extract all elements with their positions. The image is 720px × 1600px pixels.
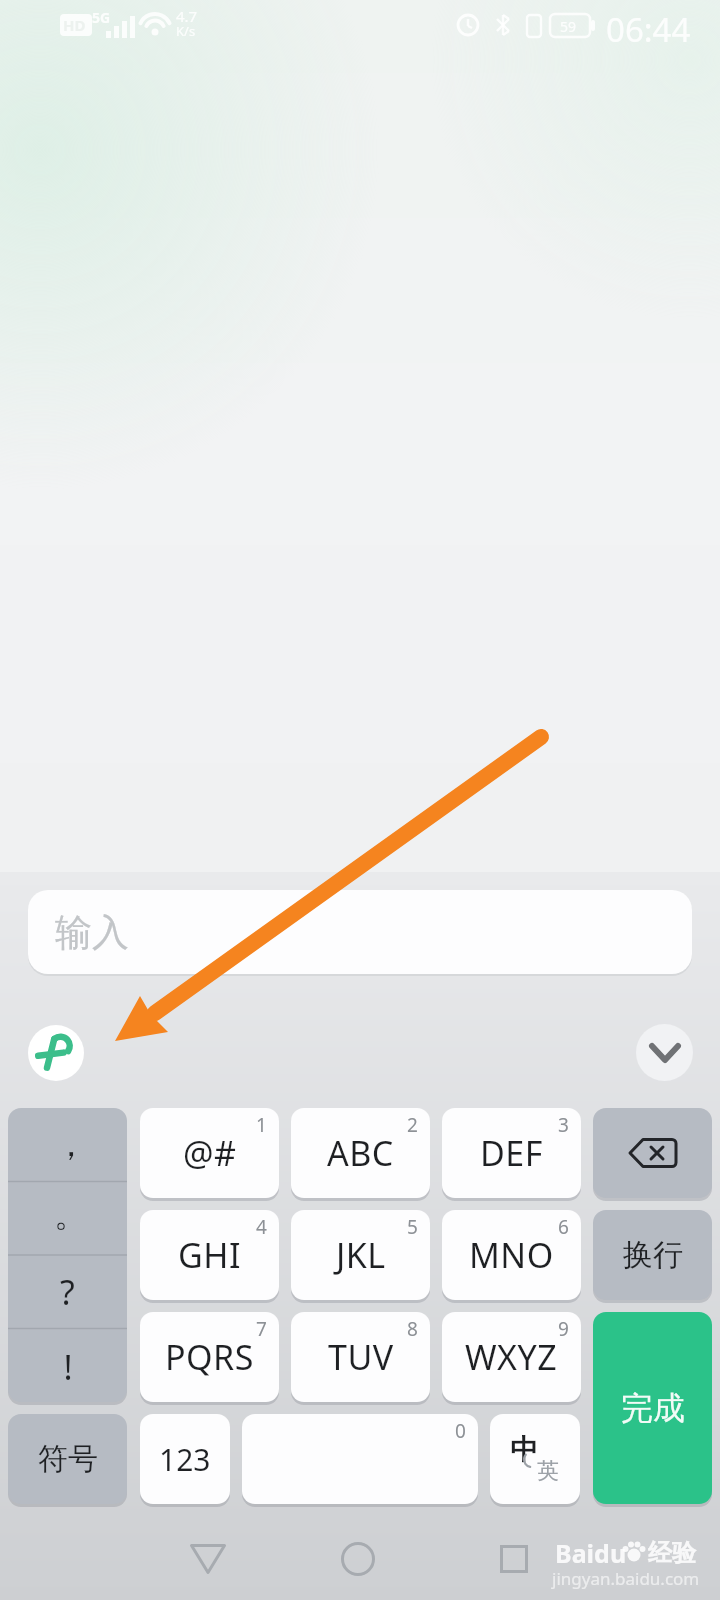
button[interactable]: DEF bbox=[442, 1108, 581, 1198]
staticText: 123 bbox=[159, 1439, 211, 1480]
button[interactable] bbox=[495, 1540, 533, 1578]
staticText: 1 bbox=[256, 1112, 267, 1138]
staticText: JKL bbox=[336, 1232, 386, 1278]
staticText: 5 bbox=[407, 1214, 418, 1240]
button[interactable] bbox=[186, 1540, 230, 1578]
staticText: DEF bbox=[480, 1130, 543, 1176]
staticText: TUV bbox=[328, 1334, 394, 1380]
staticText: 经验 bbox=[648, 1538, 696, 1568]
staticText: 完成 bbox=[621, 1388, 685, 1428]
staticText: 7 bbox=[256, 1316, 267, 1342]
staticText: 符号 bbox=[38, 1440, 98, 1478]
staticText: @# bbox=[183, 1130, 237, 1176]
staticText: 3 bbox=[558, 1112, 569, 1138]
staticText: ! bbox=[63, 1344, 73, 1390]
staticText: jingyan.baidu.com bbox=[552, 1567, 700, 1590]
button[interactable] bbox=[636, 1024, 693, 1081]
staticText: PQRS bbox=[165, 1334, 254, 1380]
staticText: 5G bbox=[92, 8, 111, 27]
staticText: 4.7 bbox=[176, 6, 198, 26]
staticText: 英 bbox=[537, 1457, 559, 1485]
staticText: WXYZ bbox=[465, 1334, 558, 1380]
staticText: 9 bbox=[558, 1316, 569, 1342]
staticText: ， bbox=[54, 1123, 88, 1166]
button[interactable]: JKL bbox=[291, 1210, 430, 1300]
button[interactable]: TUV bbox=[291, 1312, 430, 1402]
staticText: 中 bbox=[510, 1432, 538, 1467]
button[interactable]: MNO bbox=[442, 1210, 581, 1300]
staticText: Baidu bbox=[555, 1536, 627, 1570]
staticText: ? bbox=[60, 1269, 75, 1315]
button[interactable]: 输入 bbox=[28, 890, 692, 974]
button[interactable]: 完成 bbox=[593, 1312, 712, 1504]
button[interactable]: GHI bbox=[140, 1210, 279, 1300]
button[interactable] bbox=[593, 1108, 712, 1198]
button[interactable]: WXYZ bbox=[442, 1312, 581, 1402]
staticText: 0 bbox=[455, 1418, 466, 1444]
button[interactable] bbox=[28, 1025, 84, 1081]
button[interactable]: PQRS bbox=[140, 1312, 279, 1402]
button[interactable]: ABC bbox=[291, 1108, 430, 1198]
staticText: 换行 bbox=[623, 1236, 683, 1274]
staticText: 6 bbox=[558, 1214, 569, 1240]
staticText: 。 bbox=[54, 1193, 88, 1236]
staticText: 8 bbox=[407, 1316, 418, 1342]
staticText: 06:44 bbox=[606, 7, 691, 52]
staticText: ABC bbox=[327, 1130, 394, 1176]
button[interactable]: @# bbox=[140, 1108, 279, 1198]
staticText: MNO bbox=[469, 1232, 554, 1278]
staticText: K/s bbox=[176, 22, 196, 40]
button[interactable]: 换行 bbox=[593, 1210, 712, 1300]
button[interactable]: 0 bbox=[242, 1414, 478, 1504]
staticText: GHI bbox=[178, 1232, 241, 1278]
staticText: 2 bbox=[407, 1112, 418, 1138]
staticText: 4 bbox=[256, 1214, 267, 1240]
button[interactable] bbox=[339, 1540, 377, 1578]
button[interactable]: 中 bbox=[490, 1414, 580, 1504]
button[interactable]: 123 bbox=[140, 1414, 230, 1504]
staticText: HD bbox=[63, 15, 86, 35]
button[interactable]: ， bbox=[8, 1108, 127, 1402]
staticText: 输入 bbox=[55, 909, 129, 956]
staticText: 59 bbox=[560, 17, 577, 36]
button[interactable]: 符号 bbox=[8, 1414, 127, 1504]
